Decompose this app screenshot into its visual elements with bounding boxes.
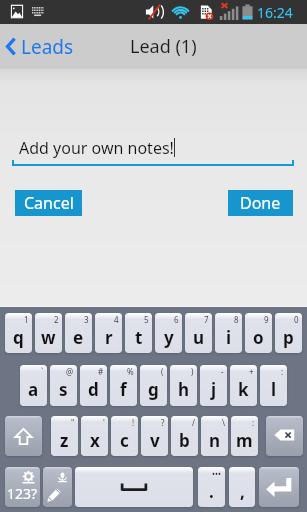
staticText: u	[193, 326, 205, 349]
staticText: 16:24	[257, 3, 293, 22]
button[interactable]: 8	[215, 313, 242, 353]
staticText: 7	[204, 314, 209, 325]
staticText: ?	[161, 417, 165, 428]
button[interactable]: )	[170, 365, 197, 406]
staticText: 4	[114, 314, 119, 325]
staticText: •••	[212, 468, 222, 479]
staticText: .	[209, 480, 214, 503]
staticText: o	[253, 326, 264, 349]
staticText: !	[132, 417, 135, 428]
staticText: 3	[84, 314, 89, 325]
staticText: 123?	[7, 484, 38, 503]
button[interactable]: 9	[245, 313, 272, 353]
button[interactable]: 4	[95, 313, 122, 353]
staticText: q	[13, 326, 24, 349]
staticText: 1	[24, 314, 29, 325]
button[interactable]: /	[171, 416, 198, 456]
button[interactable]: ,	[229, 467, 255, 507]
staticText: "	[71, 417, 75, 428]
staticText: '	[103, 417, 105, 428]
staticText: Add your own notes!	[19, 137, 174, 159]
staticText: Lead (1)	[130, 34, 197, 59]
button[interactable]: 6	[155, 313, 182, 353]
staticText: +	[249, 366, 254, 377]
button[interactable]: Backspace	[266, 416, 303, 456]
staticText: :	[252, 417, 255, 428]
staticText: )	[191, 366, 194, 377]
staticText: v	[150, 429, 160, 452]
button[interactable]: :	[260, 365, 287, 406]
button[interactable]: Enter	[259, 467, 299, 507]
button[interactable]: :	[231, 416, 258, 456]
button[interactable]: !	[111, 416, 138, 456]
staticText: t	[135, 326, 143, 349]
button[interactable]: '	[81, 416, 108, 456]
staticText: r	[105, 326, 113, 349]
staticText: 8	[234, 314, 239, 325]
button[interactable]: Done	[228, 190, 293, 216]
staticText: k	[238, 378, 249, 401]
staticText: 2	[54, 314, 59, 325]
button[interactable]: Shift	[5, 416, 42, 456]
staticText: h	[178, 378, 190, 401]
staticText: (	[161, 366, 164, 377]
staticText: l	[271, 378, 277, 401]
staticText: Done	[240, 192, 281, 214]
button[interactable]: (	[140, 365, 167, 406]
staticText: w	[41, 326, 56, 349]
button[interactable]: #	[80, 365, 107, 406]
button[interactable]: Space	[75, 467, 193, 507]
staticText: 5	[144, 314, 149, 325]
staticText: Cancel	[24, 192, 74, 214]
button[interactable]: 2	[35, 313, 62, 353]
staticText: 9	[264, 314, 269, 325]
staticText: p	[283, 326, 294, 349]
button[interactable]: 0	[275, 313, 302, 353]
staticText: b	[179, 429, 190, 452]
staticText: z	[60, 429, 69, 452]
button[interactable]: @	[50, 365, 77, 406]
staticText: j	[211, 378, 217, 401]
staticText: s	[59, 378, 68, 401]
staticText: i	[226, 326, 232, 349]
button[interactable]: ?	[141, 416, 168, 456]
button[interactable]: Symbols	[5, 467, 40, 507]
button[interactable]: "	[51, 416, 78, 456]
button[interactable]: •••	[198, 467, 225, 507]
staticText: x	[90, 429, 100, 452]
staticText: m	[236, 429, 253, 452]
staticText: d	[88, 378, 99, 401]
staticText: `	[41, 366, 44, 377]
staticText: -	[221, 366, 224, 377]
button[interactable]: 1	[5, 313, 32, 353]
button[interactable]: 7	[185, 313, 212, 353]
button[interactable]: Leads	[2, 24, 86, 69]
staticText: g	[148, 378, 159, 401]
button[interactable]: `	[20, 365, 47, 406]
staticText: f	[120, 378, 127, 401]
button[interactable]: Voice input	[43, 467, 72, 507]
staticText: 6	[174, 314, 179, 325]
button[interactable]: \	[201, 416, 228, 456]
staticText: /	[192, 417, 195, 428]
staticText: ,	[240, 480, 245, 503]
staticText: \	[222, 417, 225, 428]
staticText: a	[28, 378, 39, 401]
button[interactable]: 5	[125, 313, 152, 353]
staticText: y	[164, 326, 174, 349]
staticText: 0	[294, 314, 299, 325]
staticText: #	[98, 366, 104, 377]
button[interactable]: %	[110, 365, 137, 406]
staticText: @	[66, 366, 74, 377]
staticText: %	[127, 366, 134, 377]
button[interactable]: +	[230, 365, 257, 406]
staticText: Leads	[21, 34, 74, 60]
staticText: n	[209, 429, 221, 452]
staticText: e	[73, 326, 84, 349]
button[interactable]: 3	[65, 313, 92, 353]
button[interactable]: Cancel	[15, 190, 82, 216]
button[interactable]: -	[200, 365, 227, 406]
staticText: c	[120, 429, 129, 452]
staticText: :	[281, 366, 284, 377]
